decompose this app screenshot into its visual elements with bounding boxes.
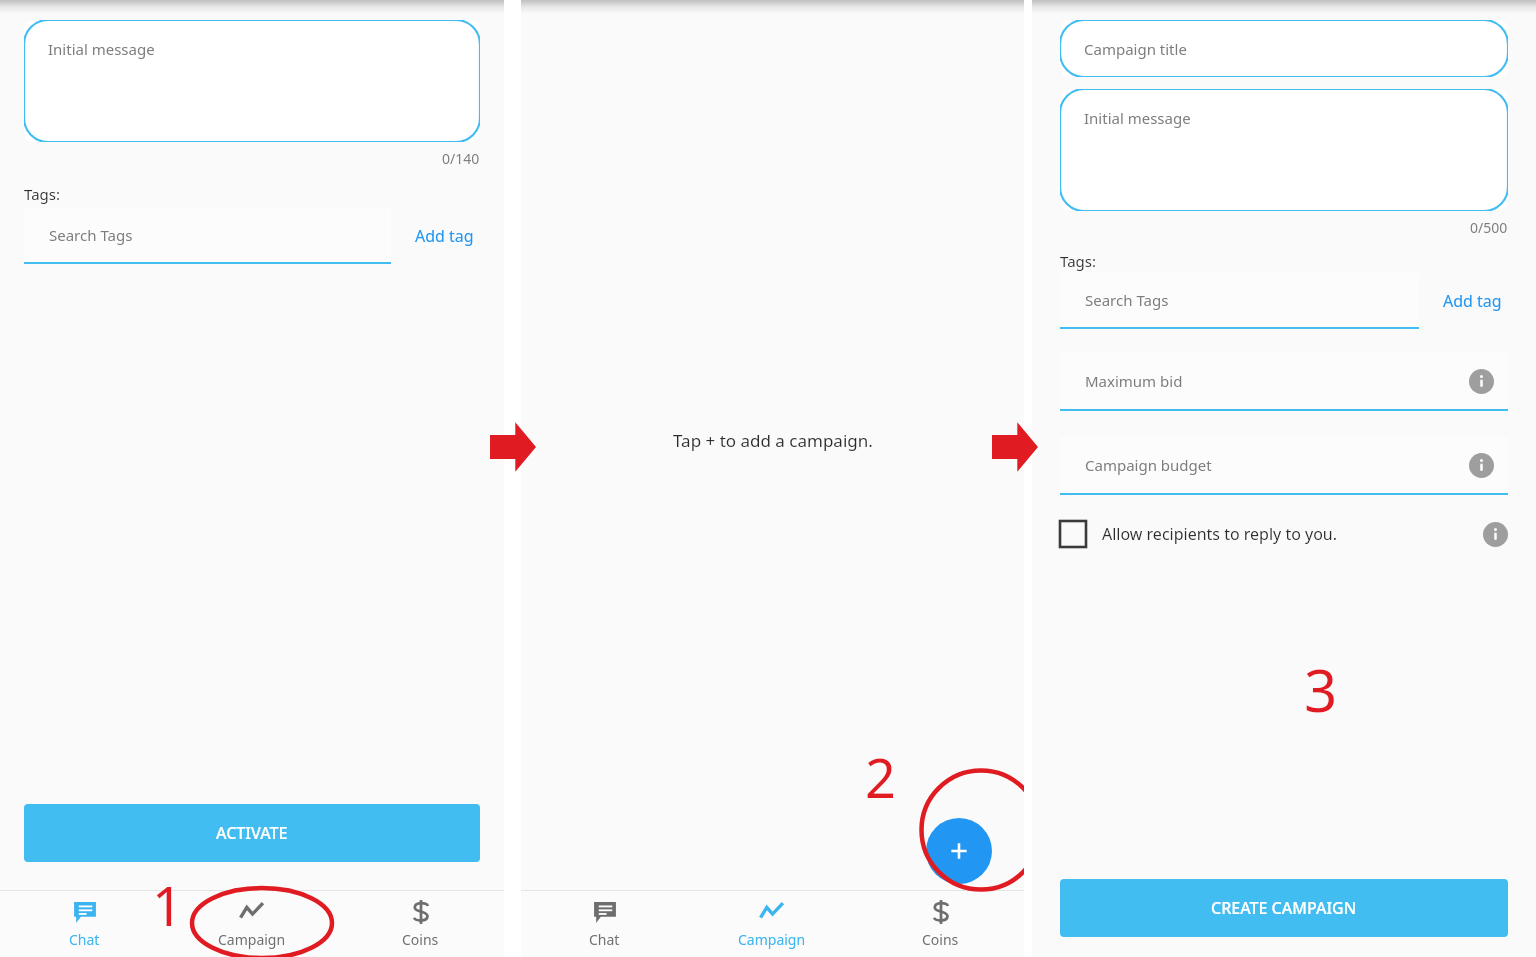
- button[interactable]: ACTIVATE: [24, 804, 480, 862]
- staticText: Campaign title: [1084, 39, 1187, 59]
- staticText: 1: [152, 868, 183, 942]
- button[interactable]: Add campaign: [926, 818, 992, 884]
- staticText: Campaign budget: [1085, 455, 1212, 475]
- button[interactable]: Chat: [69, 893, 100, 955]
- staticText: Campaign: [218, 930, 286, 949]
- button[interactable]: Initial message: [24, 20, 480, 142]
- staticText: Chat: [69, 930, 100, 949]
- staticText: Search Tags: [1085, 290, 1169, 310]
- staticText: 3: [1304, 650, 1338, 729]
- staticText: Tap + to add a campaign.: [673, 429, 873, 452]
- staticText: Initial message: [1084, 108, 1191, 128]
- staticText: Search Tags: [49, 225, 133, 245]
- button[interactable]: Campaign: [218, 893, 286, 955]
- button[interactable]: Campaign: [738, 893, 806, 955]
- button[interactable]: Maximum bid: [1060, 353, 1508, 409]
- button[interactable]: Search Tags: [24, 208, 391, 262]
- button[interactable]: Allow recipients to reply to you.: [1060, 521, 1508, 547]
- staticText: 2: [865, 740, 896, 814]
- staticText: Tags:: [24, 184, 60, 204]
- staticText: Campaign: [738, 930, 806, 949]
- staticText: Add tag: [1443, 290, 1502, 312]
- button[interactable]: Campaign budget: [1060, 437, 1508, 493]
- button[interactable]: Add tag: [409, 217, 480, 255]
- staticText: Coins: [922, 930, 959, 949]
- button[interactable]: Add tag: [1437, 282, 1508, 320]
- staticText: Tags:: [1060, 251, 1096, 271]
- button[interactable]: Coins: [922, 893, 959, 955]
- staticText: Initial message: [48, 39, 155, 59]
- staticText: CREATE CAMPAIGN: [1211, 897, 1357, 919]
- button[interactable]: Campaign title: [1060, 20, 1508, 77]
- staticText: ACTIVATE: [216, 822, 288, 844]
- staticText: Chat: [589, 930, 620, 949]
- staticText: Allow recipients to reply to you.: [1102, 523, 1338, 545]
- button[interactable]: Information: [1469, 369, 1494, 394]
- staticText: Maximum bid: [1085, 371, 1183, 391]
- button[interactable]: Chat: [589, 893, 620, 955]
- staticText: Add tag: [415, 225, 474, 247]
- button[interactable]: Search Tags: [1060, 273, 1419, 327]
- button[interactable]: Information: [1483, 522, 1508, 547]
- button[interactable]: Initial message: [1060, 89, 1508, 211]
- staticText: Coins: [402, 930, 439, 949]
- staticText: 0/140: [442, 149, 480, 168]
- button[interactable]: Coins: [402, 893, 439, 955]
- staticText: 0/500: [1470, 218, 1508, 237]
- button[interactable]: CREATE CAMPAIGN: [1060, 879, 1508, 937]
- button[interactable]: Information: [1469, 453, 1494, 478]
